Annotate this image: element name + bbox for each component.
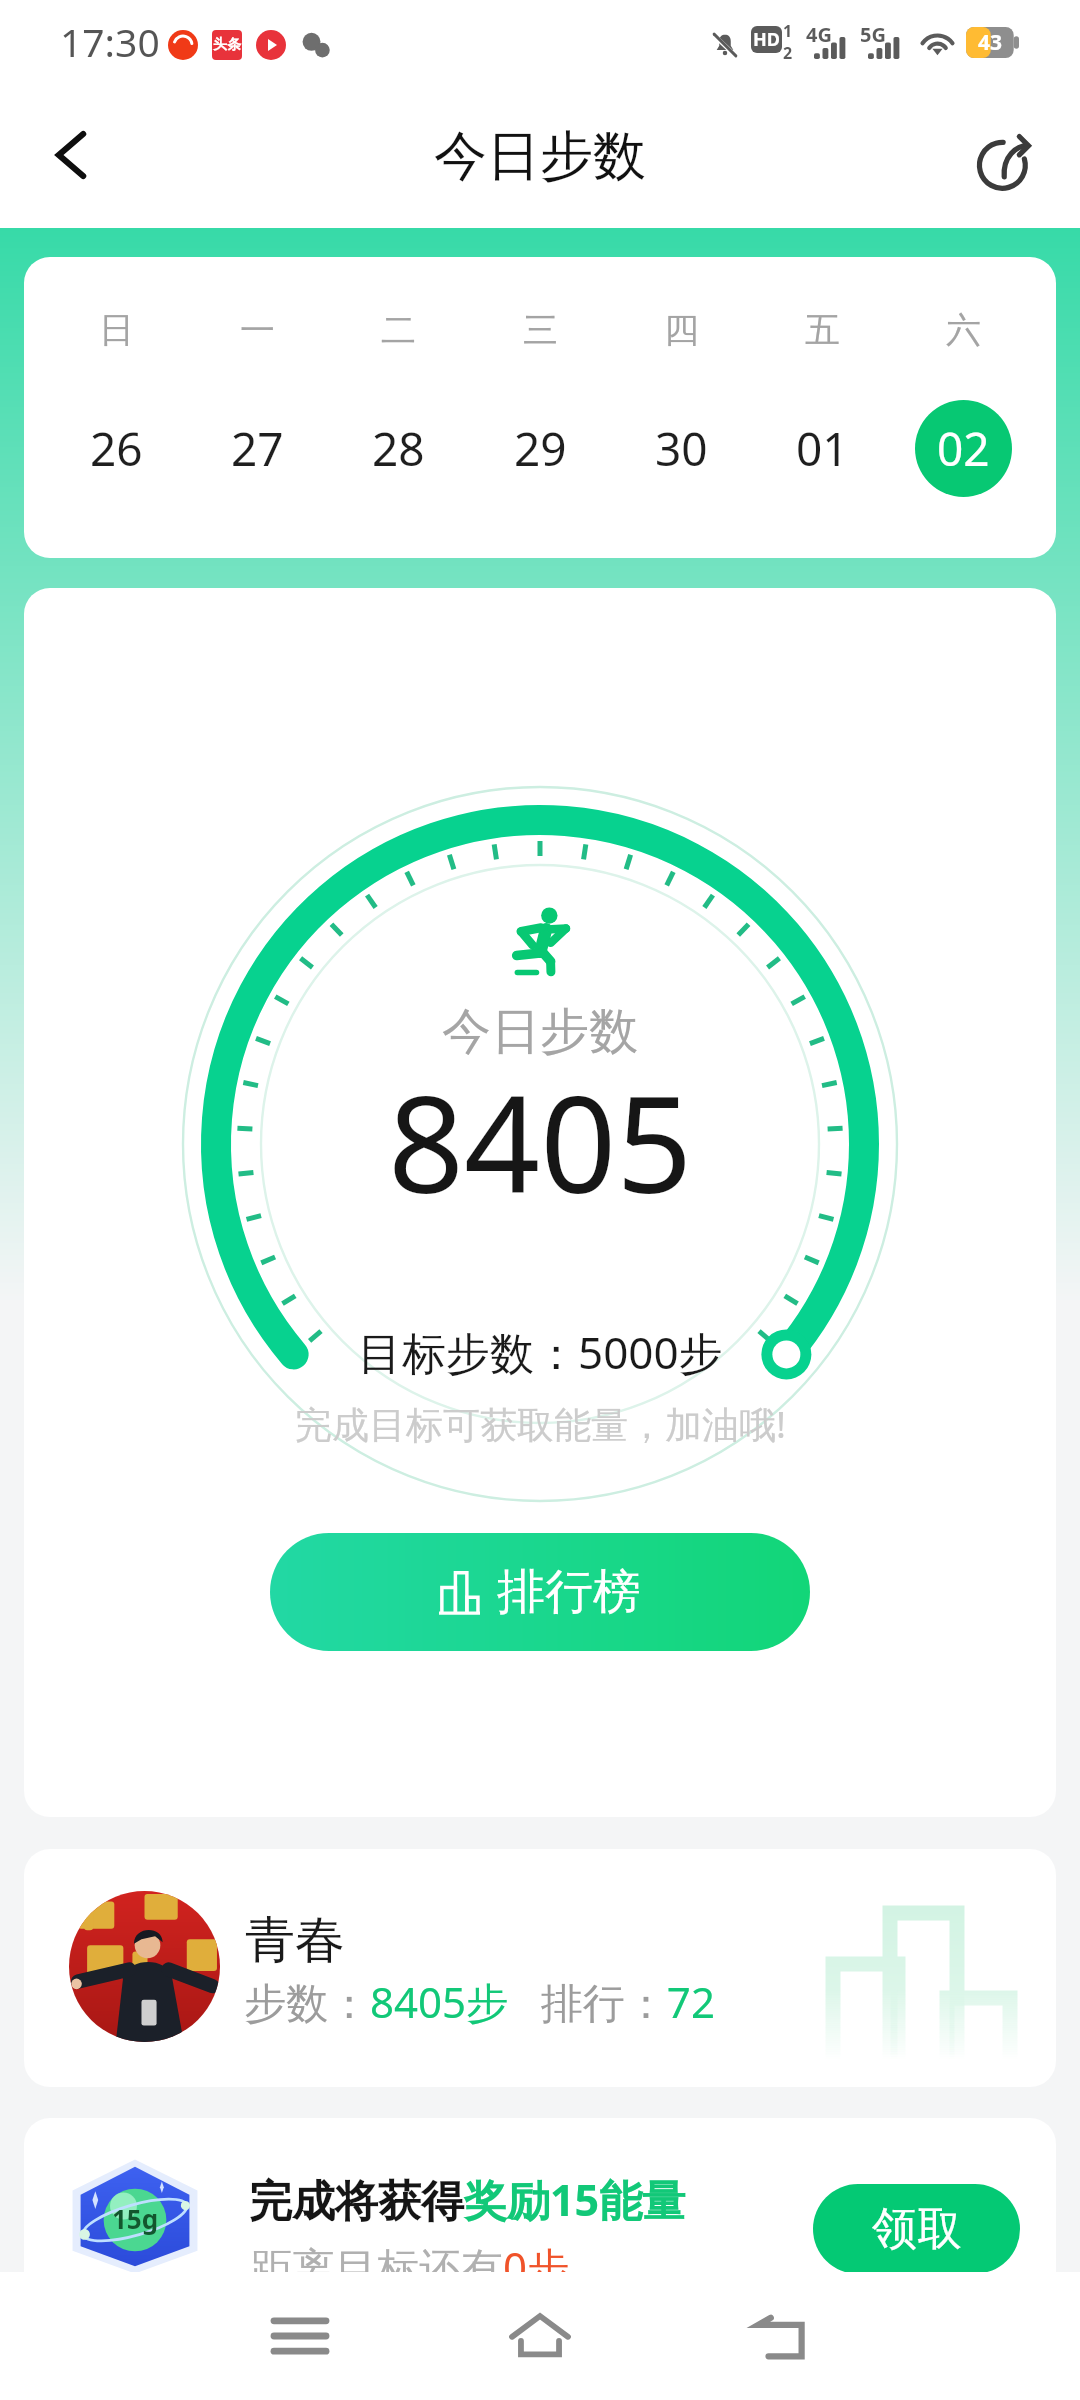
staticText: 29 [514, 417, 567, 480]
staticText: 1 [783, 20, 793, 42]
staticText: 2 [783, 42, 793, 64]
staticText: 28 [372, 417, 425, 480]
button[interactable]: 29 [492, 400, 589, 497]
staticText: 02 [937, 417, 990, 480]
button[interactable]: Recent apps [245, 2281, 355, 2391]
staticText: 五 [805, 308, 840, 352]
button[interactable]: 28 [350, 400, 447, 497]
staticText: 一 [240, 308, 275, 352]
staticText: 15g [112, 2201, 159, 2236]
staticText: 青春 [245, 1909, 345, 1972]
staticText: 17:30 [60, 15, 160, 68]
button[interactable]: 领取 [813, 2184, 1020, 2274]
staticText: 43 [978, 28, 1003, 57]
staticText: 日 [99, 308, 134, 352]
staticText: 5G [860, 21, 886, 48]
staticText: 8405 [388, 1051, 693, 1232]
staticText: 今日步数 [434, 123, 646, 190]
staticText: 30 [655, 417, 708, 480]
staticText: HD [753, 27, 780, 52]
button[interactable]: 26 [68, 400, 165, 497]
staticText: 距离目标还有0步 [251, 2238, 570, 2295]
staticText: 4G [806, 21, 832, 48]
staticText: 01 [796, 417, 849, 480]
staticText: 完成将获得奖励15能量 [249, 2170, 686, 2229]
staticText: 四 [664, 308, 699, 352]
staticText: 步数：8405步 排行：72 [244, 1973, 715, 2030]
staticText: 26 [90, 417, 143, 480]
staticText: 完成目标可获取能量，加油哦! [295, 1398, 786, 1449]
button[interactable]: 30 [633, 400, 730, 497]
button[interactable]: 27 [209, 400, 306, 497]
button[interactable]: 01 [774, 400, 871, 497]
button[interactable]: 02 [915, 400, 1012, 497]
button[interactable]: Back [26, 110, 116, 200]
staticText: 六 [946, 308, 981, 352]
button[interactable]: 排行榜 [270, 1533, 810, 1651]
staticText: 27 [231, 417, 284, 480]
staticText: 目标步数：5000步 [358, 1322, 723, 1382]
staticText: 领取 [872, 2201, 962, 2258]
button[interactable]: Share [962, 116, 1052, 206]
staticText: 二 [381, 308, 416, 352]
staticText: 排行榜 [497, 1562, 641, 1622]
button[interactable]: Home [485, 2281, 595, 2391]
staticText: 头条 [213, 36, 241, 54]
staticText: 今日步数 [442, 1001, 638, 1063]
button[interactable]: 青春 [24, 1849, 1056, 2087]
button[interactable]: Back [725, 2282, 835, 2392]
staticText: 三 [523, 308, 558, 352]
